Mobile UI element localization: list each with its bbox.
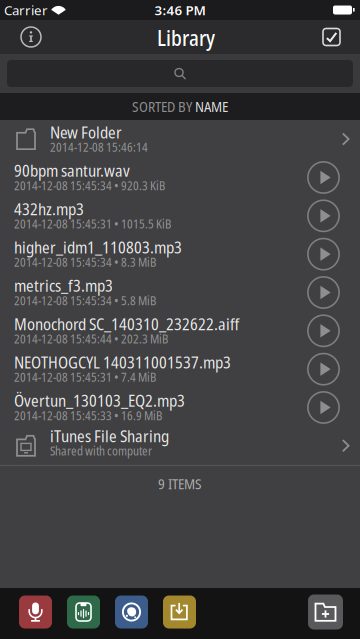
staticText: 2014-12-08 15:45:34 • 5.8 MiB	[14, 292, 156, 309]
button[interactable]: higher_idm1_110803.mp3	[0, 235, 360, 273]
staticText: Monochord SC_140310_232622.aiff	[14, 313, 239, 335]
button[interactable]: 90bpm santur.wav	[0, 158, 360, 197]
button[interactable]: New folder	[308, 594, 343, 629]
staticText: 2014-12-08 15:45:31 • 1015.5 KiB	[14, 216, 171, 232]
button[interactable]: Play	[307, 276, 340, 309]
button[interactable]: Play	[307, 238, 340, 271]
staticText: Library	[157, 24, 215, 52]
staticText: 3:46 PM	[154, 1, 205, 19]
staticText: 2014-12-08 15:45:33 • 16.9 MiB	[14, 407, 162, 424]
button[interactable]: NEOTHOGCYL 140311001537.mp3	[0, 350, 360, 388]
button[interactable]: metrics_f3.mp3	[0, 273, 360, 312]
staticText: 432hz.mp3	[14, 198, 84, 220]
button[interactable]: Play	[307, 199, 340, 232]
staticText: 9 ITEMS	[158, 474, 202, 494]
button[interactable]: Info	[20, 26, 42, 48]
staticText: SORTED BY	[132, 97, 192, 116]
staticText: New Folder	[50, 121, 122, 143]
staticText: 2014-12-08 15:45:31 • 7.4 MiB	[14, 369, 156, 385]
staticText: NAME	[192, 97, 228, 116]
staticText: 2014-12-08 15:45:34 • 8.3 MiB	[14, 254, 156, 270]
button[interactable]: Select items	[322, 27, 341, 46]
staticText: 2014-12-08 15:45:44 • 202.3 MiB	[14, 331, 168, 347]
button[interactable]: iTunes File Sharing	[0, 427, 360, 465]
button[interactable]: Browse online	[115, 595, 148, 628]
button[interactable]: Övertun_130103_EQ2.mp3	[0, 388, 360, 427]
button[interactable]: Play	[307, 353, 340, 386]
button[interactable]: Play	[307, 161, 340, 194]
staticText: NEOTHOGCYL 140311001537.mp3	[14, 351, 231, 373]
staticText: metrics_f3.mp3	[14, 274, 113, 297]
staticText: 90bpm santur.wav	[14, 159, 130, 182]
staticText: 2014-12-08 15:45:34 • 920.3 KiB	[14, 177, 165, 194]
button[interactable]: 432hz.mp3	[0, 197, 360, 235]
button[interactable]: Change sort order	[0, 93, 360, 120]
button[interactable]: Voice memos	[67, 595, 100, 628]
staticText: Carrier	[4, 1, 48, 19]
button[interactable]: Record	[19, 595, 52, 628]
button[interactable]: New Folder	[0, 120, 360, 158]
staticText: 2014-12-08 15:46:14	[50, 139, 148, 155]
staticText: Övertun_130103_EQ2.mp3	[14, 389, 185, 412]
staticText: higher_idm1_110803.mp3	[14, 236, 182, 258]
button[interactable]: Play	[307, 314, 340, 347]
button[interactable]: Search	[0, 54, 360, 93]
button[interactable]: Import	[163, 595, 196, 628]
staticText: Shared with computer	[50, 443, 152, 459]
staticText: iTunes File Sharing	[50, 425, 169, 447]
button[interactable]: Monochord SC_140310_232622.aiff	[0, 312, 360, 350]
button[interactable]: Play	[307, 391, 340, 424]
